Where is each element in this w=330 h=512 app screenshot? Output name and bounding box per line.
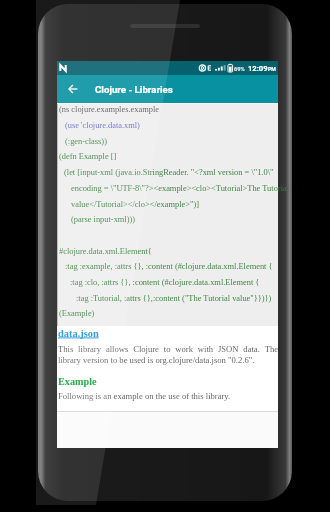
staticText: 69% <box>234 66 245 73</box>
staticText: (parse input-xml))) <box>71 215 136 224</box>
staticText: This library allows Clojure to work with… <box>58 344 278 365</box>
staticText: 12:09 <box>248 64 268 73</box>
staticText: :tag :Tutorial, :attrs {},:content ("The… <box>76 294 272 303</box>
staticText: PM <box>268 66 276 72</box>
staticText: Following is an example on the use of th… <box>58 391 231 401</box>
staticText: data.json <box>58 328 99 340</box>
staticText: (defn Example [] <box>59 152 117 161</box>
staticText: Clojure - Libraries <box>95 84 173 95</box>
staticText: (let [input-xml (java.io.StringReader. "… <box>64 168 274 177</box>
staticText: (Example) <box>59 309 95 318</box>
staticText: (:gen-class)) <box>65 137 107 146</box>
staticText: #clojure.data.xml.Element{ <box>59 247 152 256</box>
staticText: encoding = \"UTF-8\"?><example><clo><Tut… <box>71 184 290 193</box>
staticText: Example <box>58 376 97 387</box>
staticText: value</Tutorial></clo></example>")] <box>71 200 199 209</box>
staticText: (ns clojure.examples.example <box>59 105 159 114</box>
button[interactable]: Navigate up <box>62 75 83 103</box>
staticText: :tag :clo, :attrs {}, :content (#clojure… <box>70 278 260 287</box>
staticText: :tag :example, :attrs {}, :content (#clo… <box>65 262 273 271</box>
staticText: (use 'clojure.data.xml) <box>65 121 140 130</box>
